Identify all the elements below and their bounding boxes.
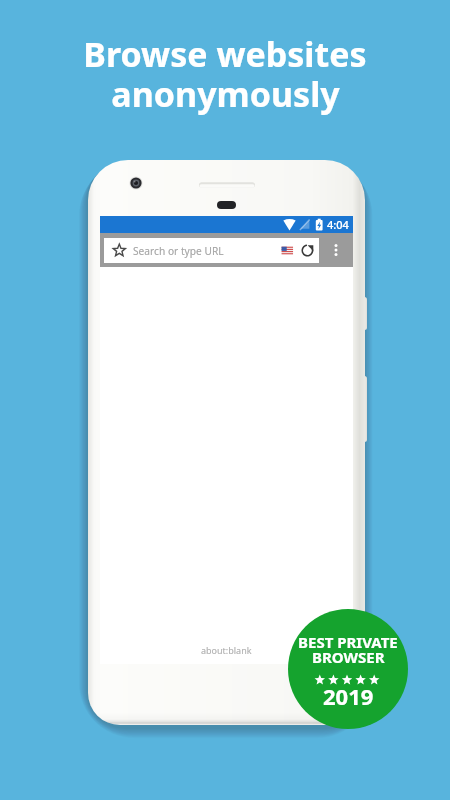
button[interactable]: More options (328, 233, 450, 267)
staticText: BROWSER (312, 647, 385, 667)
staticText: Search or type URL (133, 244, 224, 258)
staticText: Browse websites (83, 31, 367, 77)
staticText: 4:04 (327, 217, 349, 232)
staticText: about:blank (201, 644, 252, 656)
button[interactable]: Search or type URL (104, 238, 319, 263)
staticText: 2019 (323, 681, 374, 711)
staticText: BEST PRIVATE (298, 632, 398, 652)
button[interactable]: Best private browser 2019 award (288, 609, 408, 729)
staticText: anonymously (111, 71, 340, 117)
